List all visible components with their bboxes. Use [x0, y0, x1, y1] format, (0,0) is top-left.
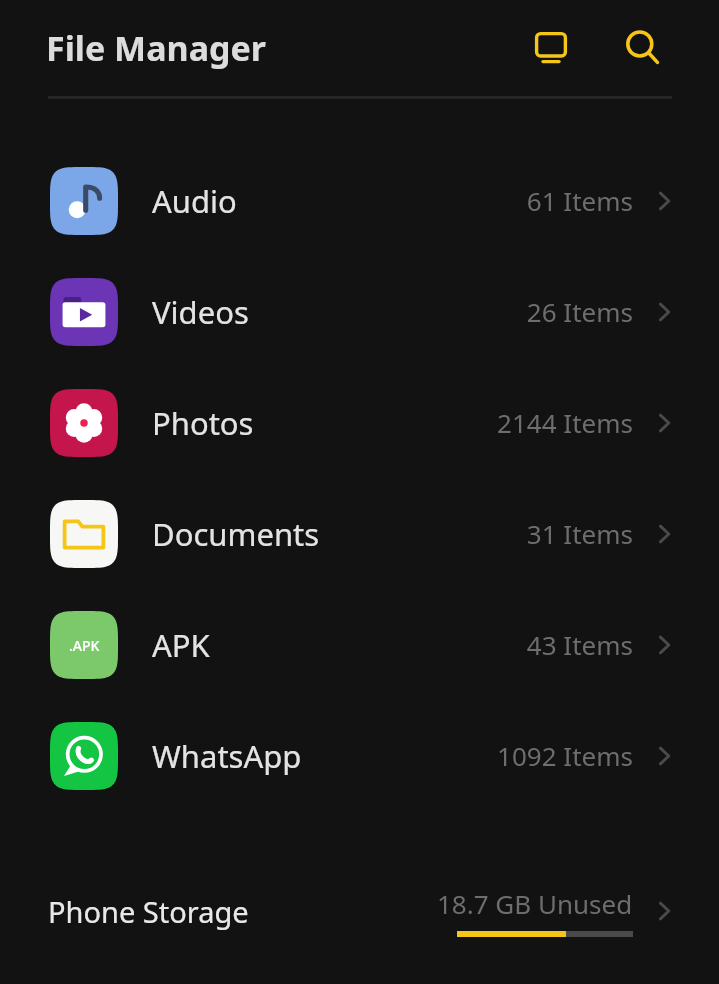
staticText: 43 Items: [526, 627, 633, 662]
button[interactable]: Documents: [0, 478, 719, 589]
staticText: Audio: [152, 180, 237, 222]
staticText: 61 Items: [526, 183, 633, 218]
button[interactable]: .APK: [0, 589, 719, 700]
staticText: WhatsApp: [152, 735, 302, 777]
button[interactable]: Audio: [0, 145, 719, 256]
button[interactable]: WhatsApp: [0, 700, 719, 811]
staticText: Phone Storage: [48, 892, 249, 931]
staticText: Videos: [152, 291, 249, 333]
staticText: File Manager: [46, 25, 266, 71]
button[interactable]: Search: [615, 20, 671, 76]
staticText: APK: [152, 624, 210, 666]
button[interactable]: Videos: [0, 256, 719, 367]
staticText: 2144 Items: [497, 405, 633, 440]
staticText: 18.7 GB Unused: [437, 886, 633, 921]
staticText: Documents: [152, 513, 320, 555]
button[interactable]: Cast to display: [523, 20, 579, 76]
button[interactable]: Photos: [0, 367, 719, 478]
button[interactable]: Phone Storage: [0, 856, 719, 966]
staticText: Photos: [152, 402, 254, 444]
staticText: 31 Items: [526, 516, 633, 551]
staticText: 1092 Items: [497, 738, 633, 773]
staticText: 26 Items: [526, 294, 633, 329]
staticText: .APK: [69, 636, 100, 655]
